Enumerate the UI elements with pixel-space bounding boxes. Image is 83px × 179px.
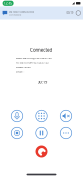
button[interactable]: Keypad (29, 107, 54, 124)
staticText: Codec: G722 (16, 64, 65, 75)
button[interactable]: Record (5, 124, 29, 141)
button[interactable]: Speaker (54, 107, 78, 124)
staticText: 12:45 (4, 0, 27, 12)
button[interactable]: via NOW-WORLD.COM (0, 6, 83, 19)
staticText: Connected (9, 12, 56, 24)
staticText: To: sip:1019@192.168.0.122 (16, 60, 83, 70)
button[interactable]: Mute (5, 107, 29, 124)
staticText: DTMF: - (16, 69, 44, 80)
button[interactable]: End call (33, 143, 49, 159)
button[interactable]: More (54, 124, 78, 141)
button[interactable]: Hold (29, 124, 54, 141)
staticText: 00:19 (66, 10, 83, 22)
staticText: From: sip:1010@192.168.0.122 (16, 55, 83, 66)
staticText: Connected (30, 46, 83, 62)
staticText: 00:19 (37, 78, 60, 91)
staticText: via NOW-WORLD.COM (9, 9, 83, 21)
